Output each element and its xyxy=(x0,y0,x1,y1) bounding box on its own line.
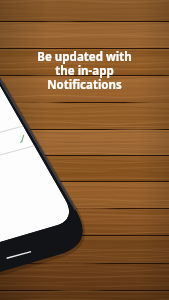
staticText: Be updated with the in-app Notifications xyxy=(37,49,132,92)
